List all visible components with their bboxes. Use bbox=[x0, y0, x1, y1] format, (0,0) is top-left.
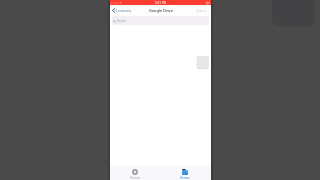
staticText: Google Drive bbox=[149, 8, 173, 13]
button[interactable]: Browse bbox=[160, 166, 211, 180]
button[interactable]: Select bbox=[196, 8, 207, 15]
staticText: Search bbox=[117, 19, 127, 23]
button[interactable]: Search bbox=[112, 16, 209, 25]
staticText: Browse bbox=[180, 176, 190, 180]
staticText: Recents bbox=[130, 176, 140, 180]
staticText: 9:41 PM bbox=[155, 1, 167, 5]
button[interactable]: Recents bbox=[110, 166, 160, 180]
staticText: Locations bbox=[116, 8, 132, 13]
button[interactable]: Locations bbox=[112, 5, 132, 15]
